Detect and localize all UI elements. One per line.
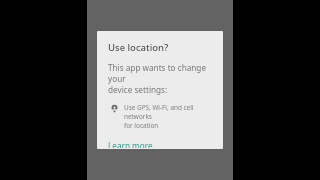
staticText: Learn more — [108, 140, 153, 148]
staticText: This app wants to change your device set… — [108, 62, 213, 95]
staticText: Use GPS, Wi-Fi, and cell networks for lo… — [124, 103, 213, 130]
staticText: Use location? — [108, 41, 169, 54]
button[interactable]: Learn more — [108, 139, 153, 149]
